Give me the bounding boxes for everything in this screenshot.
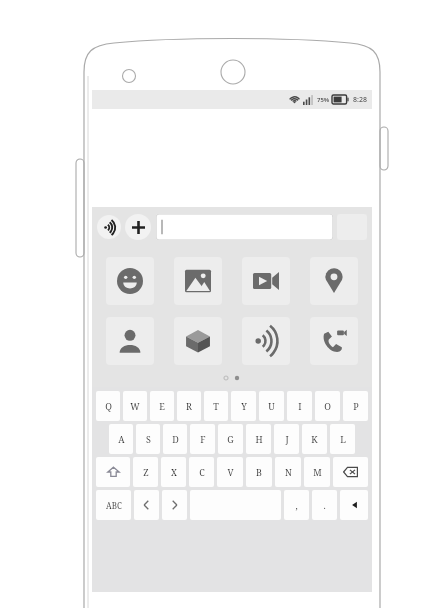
staticText: O <box>324 400 331 412</box>
button[interactable]: ABC <box>96 490 131 520</box>
staticText: 75% <box>317 96 330 104</box>
button[interactable]: Video <box>242 257 290 305</box>
button[interactable] <box>156 214 333 240</box>
button[interactable]: V <box>217 457 243 487</box>
button[interactable]: R <box>177 391 201 421</box>
button[interactable]: H <box>246 424 271 454</box>
button[interactable]: Shift <box>96 457 130 487</box>
staticText: G <box>227 433 234 445</box>
button[interactable]: N <box>275 457 301 487</box>
staticText: J <box>285 433 289 445</box>
button[interactable]: O <box>315 391 340 421</box>
staticText: N <box>285 466 292 478</box>
staticText: 8:28 <box>353 95 367 105</box>
staticText: B <box>256 466 262 478</box>
button[interactable]: I <box>287 391 312 421</box>
staticText: L <box>340 433 346 445</box>
button[interactable]: Audio <box>242 317 290 365</box>
button[interactable]: P <box>343 391 368 421</box>
button[interactable]: Backspace <box>333 457 368 487</box>
button[interactable]: J <box>274 424 299 454</box>
staticText: M <box>313 466 322 478</box>
staticText: U <box>268 400 275 412</box>
button[interactable]: G <box>218 424 243 454</box>
button[interactable]: Location <box>310 257 358 305</box>
button[interactable]: Z <box>133 457 158 487</box>
button[interactable]: , <box>284 490 309 520</box>
staticText: C <box>199 466 205 478</box>
staticText: R <box>186 400 192 412</box>
staticText: K <box>311 433 318 445</box>
staticText: S <box>146 433 151 445</box>
button[interactable]: M <box>304 457 330 487</box>
button[interactable]: W <box>123 391 147 421</box>
button[interactable]: K <box>302 424 327 454</box>
staticText: , <box>295 499 298 511</box>
staticText: E <box>159 400 165 412</box>
button[interactable]: Enter <box>340 490 368 520</box>
button[interactable]: T <box>204 391 228 421</box>
button[interactable]: C <box>189 457 214 487</box>
staticText: W <box>130 400 140 412</box>
staticText: F <box>200 433 206 445</box>
button[interactable]: Emoji <box>106 257 154 305</box>
button[interactable]: Next <box>162 490 187 520</box>
button[interactable]: Y <box>231 391 256 421</box>
staticText: . <box>323 499 326 511</box>
button[interactable]: Q <box>96 391 120 421</box>
staticText: Y <box>241 400 247 412</box>
button[interactable]: Video call <box>310 317 358 365</box>
button[interactable]: Add attachment <box>125 214 151 240</box>
staticText: V <box>227 466 234 478</box>
button[interactable]: 3D object <box>174 317 222 365</box>
button[interactable]: U <box>259 391 284 421</box>
button[interactable]: Photo <box>174 257 222 305</box>
button[interactable]: D <box>163 424 187 454</box>
staticText: H <box>255 433 263 445</box>
button[interactable]: A <box>109 424 133 454</box>
staticText: Q <box>105 400 112 412</box>
staticText: P <box>353 400 359 412</box>
button[interactable]: E <box>150 391 174 421</box>
button[interactable]: Voice message <box>97 215 121 239</box>
button[interactable]: Previous <box>134 490 159 520</box>
button[interactable]: L <box>330 424 355 454</box>
button[interactable]: F <box>190 424 215 454</box>
button[interactable]: . <box>312 490 337 520</box>
staticText: ABC <box>106 500 122 511</box>
staticText: A <box>118 433 125 445</box>
staticText: X <box>171 466 177 478</box>
button[interactable]: Contact <box>106 317 154 365</box>
button[interactable]: X <box>161 457 186 487</box>
staticText: D <box>172 433 179 445</box>
staticText: Z <box>143 466 149 478</box>
button[interactable]: B <box>246 457 272 487</box>
staticText: T <box>213 400 219 412</box>
button[interactable]: S <box>136 424 160 454</box>
staticText: I <box>298 400 302 412</box>
